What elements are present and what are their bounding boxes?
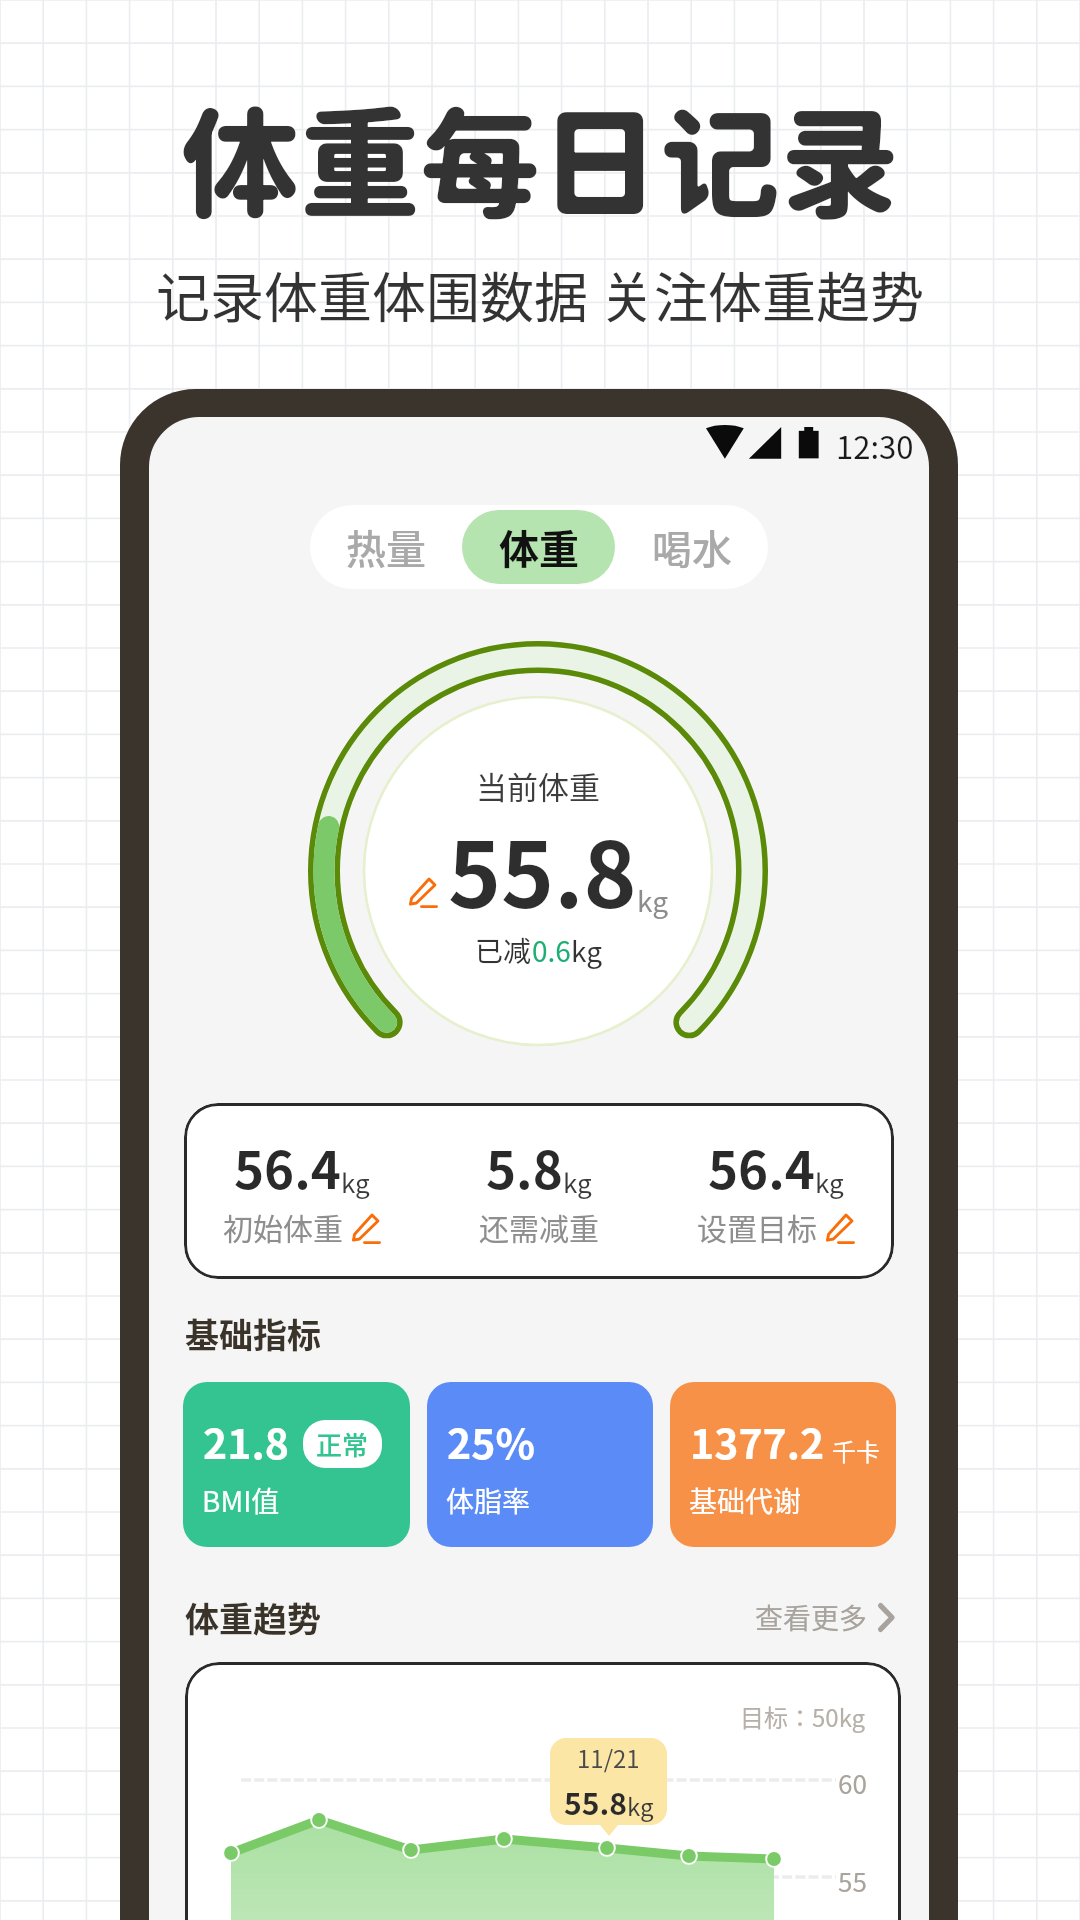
staticText: 56.4	[234, 1130, 341, 1204]
staticText: 记录体重体围数据 关注体重趋势	[0, 255, 1080, 333]
staticText: 千卡	[832, 1433, 880, 1468]
staticText: 55.8	[564, 1780, 627, 1823]
staticText: 21.8	[203, 1411, 289, 1470]
staticText: 热量	[346, 518, 426, 576]
staticText: kg	[627, 1788, 654, 1823]
staticText: 0.6	[532, 930, 571, 971]
staticText: 基础代谢	[689, 1480, 802, 1521]
button[interactable]: 查看更多	[755, 1597, 894, 1638]
staticText: kg	[341, 1163, 370, 1201]
staticText: kg	[637, 880, 668, 921]
button[interactable]: 热量	[310, 510, 462, 584]
staticText: 目标：50kg	[740, 1699, 866, 1734]
staticText: 56.4	[708, 1130, 815, 1204]
staticText: 设置目标	[697, 1205, 817, 1248]
button[interactable]: 5.8	[420, 1103, 657, 1279]
button[interactable]: 25%	[427, 1382, 653, 1547]
staticText: BMI值	[202, 1480, 280, 1521]
button[interactable]: 56.4	[184, 1103, 420, 1279]
staticText: 体重	[499, 518, 579, 576]
staticText: 当前体重	[298, 763, 778, 808]
staticText: 体重每日记录	[0, 92, 1080, 234]
staticText: 12:30	[836, 423, 914, 468]
button[interactable]: 体重	[462, 510, 615, 584]
staticText: 体重趋势	[185, 1593, 321, 1642]
staticText: 查看更多	[755, 1597, 868, 1638]
button[interactable]: 1377.2	[670, 1382, 896, 1547]
staticText: 正常	[316, 1425, 369, 1463]
staticText: kg	[815, 1163, 844, 1201]
staticText: 60	[838, 1764, 867, 1802]
staticText: kg	[571, 930, 602, 971]
button[interactable]: 21.8	[183, 1382, 410, 1547]
staticText: 初始体重	[223, 1205, 343, 1248]
staticText: 1377.2	[690, 1411, 825, 1470]
button[interactable]: 56.4	[657, 1103, 894, 1279]
staticText: 体脂率	[446, 1480, 531, 1521]
button[interactable]: 喝水	[615, 510, 768, 584]
staticText: 55.8	[448, 804, 637, 934]
staticText: 55	[838, 1862, 867, 1900]
staticText: 已减	[475, 930, 532, 971]
staticText: 喝水	[652, 518, 732, 576]
staticText: kg	[563, 1163, 592, 1201]
staticText: 还需减重	[479, 1205, 599, 1248]
staticText: 基础指标	[185, 1309, 321, 1358]
staticText: 25%	[447, 1411, 535, 1470]
button[interactable]: Edit weight	[408, 876, 438, 906]
staticText: 11/21	[577, 1740, 640, 1775]
staticText: 5.8	[486, 1130, 563, 1204]
